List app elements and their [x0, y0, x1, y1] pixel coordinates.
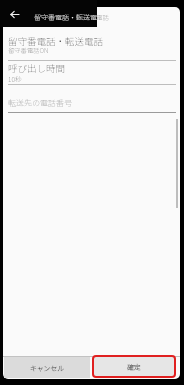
button[interactable]	[0, 0, 97, 27]
staticText: 10秒	[8, 74, 22, 84]
staticText: 留守番電話・転送電話	[34, 12, 97, 22]
button[interactable]	[3, 28, 180, 60]
staticText: キャンセル	[30, 363, 64, 373]
button[interactable]	[3, 61, 180, 84]
staticText: 留守番電話ON	[8, 46, 49, 55]
staticText: 電話	[96, 12, 109, 21]
button[interactable]: 確定	[92, 355, 176, 378]
staticText: 呼び出し時間	[8, 61, 66, 75]
button[interactable]: キャンセル	[4, 357, 90, 378]
staticText: 確定	[127, 362, 141, 372]
staticText: 留守番電話・転送電話	[8, 34, 104, 48]
staticText: 転送先の電話番号	[8, 97, 72, 109]
button[interactable]	[3, 90, 180, 116]
